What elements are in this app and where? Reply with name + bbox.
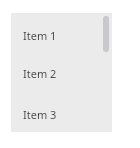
other: Scrollbar [102, 13, 110, 132]
staticText: Item 2 [23, 66, 57, 81]
button[interactable]: Item 2 [11, 43, 112, 81]
button[interactable]: Item 3 [11, 81, 112, 122]
button[interactable]: Item 1 [11, 13, 112, 43]
staticText: Item 1 [23, 28, 57, 43]
staticText: Item 3 [23, 107, 57, 122]
